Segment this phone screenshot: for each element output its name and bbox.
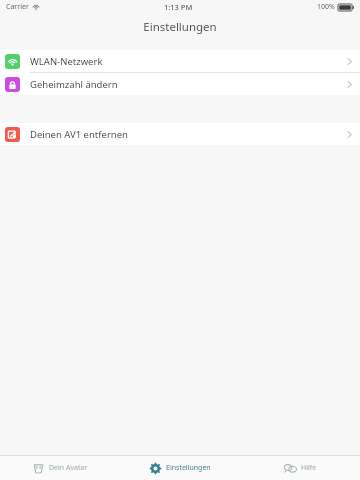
button[interactable]: Einstellungen [120, 456, 240, 480]
button[interactable]: Deinen AV1 entfernen [0, 123, 360, 145]
staticText: Einstellungen [143, 19, 217, 35]
button[interactable]: WLAN-Netzwerk [0, 50, 360, 72]
staticText: 1:13 PM [164, 2, 193, 12]
button[interactable]: Hilfe [240, 456, 360, 480]
button[interactable]: Geheimzahl ändern [0, 73, 360, 95]
staticText: Carrier [6, 2, 29, 12]
staticText: Hilfe [301, 463, 317, 473]
staticText: 100% [317, 2, 335, 12]
staticText: WLAN-Netzwerk [30, 55, 103, 68]
button[interactable]: Dein Avatar [0, 456, 120, 480]
staticText: Dein Avatar [49, 463, 88, 473]
staticText: Einstellungen [166, 463, 211, 473]
staticText: Geheimzahl ändern [30, 78, 118, 91]
staticText: Deinen AV1 entfernen [30, 128, 128, 141]
